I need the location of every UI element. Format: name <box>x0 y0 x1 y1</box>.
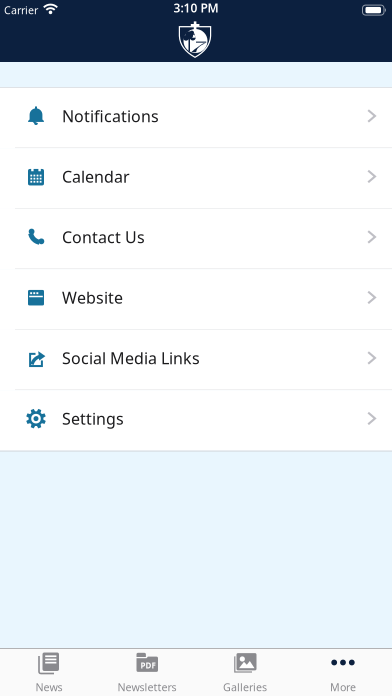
button[interactable]: Website <box>0 269 392 330</box>
staticText: Calendar <box>62 166 130 187</box>
button[interactable]: Settings <box>0 390 392 451</box>
button[interactable]: Social Media Links <box>0 330 392 390</box>
staticText: Notifications <box>62 105 159 126</box>
button[interactable]: Galleries <box>196 650 294 694</box>
staticText: Newsletters <box>117 680 176 694</box>
staticText: Social Media Links <box>62 347 200 368</box>
staticText: Galleries <box>223 680 267 694</box>
staticText: 3:10 PM <box>173 0 218 16</box>
button[interactable]: Notifications <box>0 88 392 148</box>
button[interactable]: Contact Us <box>0 209 392 269</box>
staticText: Website <box>62 287 123 308</box>
staticText: More <box>330 680 356 694</box>
button[interactable]: News <box>0 650 98 694</box>
staticText: PDF <box>140 660 155 671</box>
staticText: Carrier <box>4 3 38 17</box>
staticText: News <box>35 680 62 694</box>
button[interactable]: Calendar <box>0 148 392 209</box>
staticText: Contact Us <box>62 226 145 247</box>
button[interactable]: PDF <box>98 650 196 694</box>
staticText: Settings <box>62 408 124 429</box>
button[interactable]: More <box>294 650 392 694</box>
